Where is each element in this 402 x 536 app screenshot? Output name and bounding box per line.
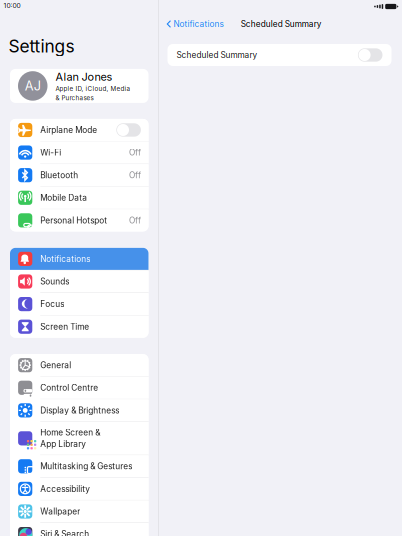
button[interactable]: General (10, 354, 148, 376)
button[interactable]: Wallpaper (10, 500, 148, 522)
button[interactable]: Accessibility (10, 478, 148, 500)
button[interactable]: Wi-Fi (10, 141, 148, 164)
button[interactable]: Sounds (10, 270, 148, 292)
button[interactable]: Airplane Mode (10, 119, 148, 141)
button[interactable]: Siri & Search (10, 523, 148, 536)
staticText: Sounds (40, 276, 69, 286)
staticText: App Library (40, 439, 86, 449)
button[interactable]: Multitasking & Gestures (10, 455, 148, 477)
staticText: Personal Hotspot (40, 215, 107, 225)
staticText: Wi-Fi (40, 148, 61, 158)
button[interactable]: Notifications (158, 16, 223, 32)
staticText: Control Centre (40, 383, 98, 393)
staticText: General (40, 360, 71, 370)
staticText: Screen Time (40, 322, 89, 332)
staticText: Accessibility (40, 484, 90, 494)
button[interactable]: Screen Time (10, 316, 148, 338)
staticText: Off (129, 148, 141, 158)
button[interactable]: Bluetooth (10, 164, 148, 186)
button[interactable]: AJ (10, 69, 148, 103)
button[interactable]: Focus (10, 293, 148, 315)
staticText: Focus (40, 299, 64, 309)
staticText: Off (129, 215, 141, 225)
button[interactable]: Scheduled Summary (167, 44, 391, 66)
button[interactable]: Personal Hotspot (10, 209, 148, 231)
staticText: Scheduled Summary (241, 19, 322, 29)
staticText: Notifications (40, 254, 90, 264)
button[interactable]: Display & Brightness (10, 399, 148, 421)
staticText: Settings (9, 36, 75, 57)
staticText: Apple ID, iCloud, Media (55, 85, 130, 93)
staticText: Home Screen & (40, 428, 100, 438)
button[interactable]: Notifications (10, 248, 148, 270)
button[interactable]: Mobile Data (10, 187, 148, 209)
staticText: Display & Brightness (40, 405, 119, 415)
staticText: Alan Jones (55, 70, 112, 83)
staticText: Siri & Search (40, 529, 89, 536)
staticText: Multitasking & Gestures (40, 461, 132, 471)
staticText: Airplane Mode (40, 125, 97, 135)
button[interactable]: Control Centre (10, 377, 148, 399)
staticText: Off (129, 170, 141, 180)
button[interactable]: Home Screen & (10, 422, 148, 455)
staticText: Scheduled Summary (176, 50, 257, 60)
staticText: AJ (25, 78, 41, 94)
staticText: 10:00 (4, 2, 21, 10)
staticText: Bluetooth (40, 170, 78, 180)
staticText: Mobile Data (40, 193, 87, 203)
staticText: Notifications (173, 19, 223, 29)
staticText: & Purchases (55, 94, 93, 102)
staticText: Wallpaper (40, 506, 80, 516)
